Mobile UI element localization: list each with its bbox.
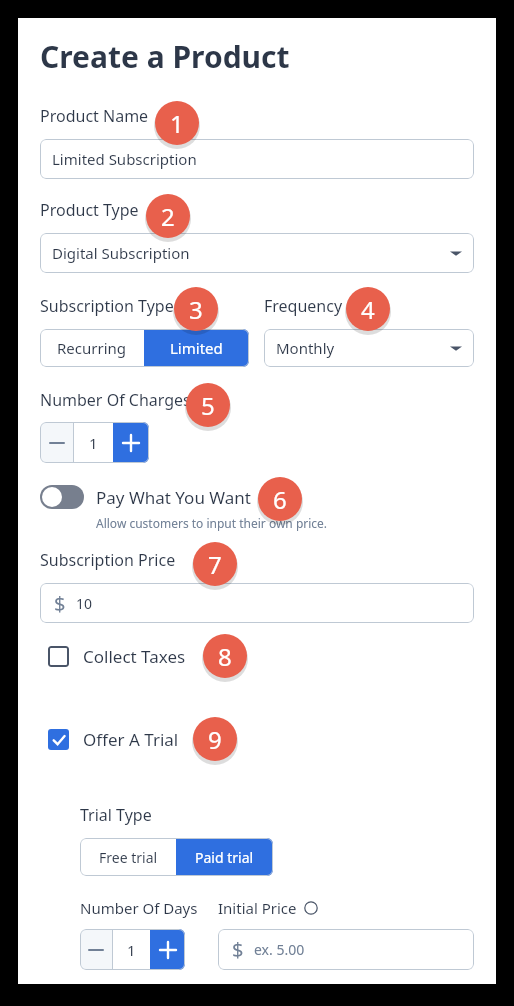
staticText: Offer A Trial [83, 728, 179, 751]
staticText: 8 [218, 640, 232, 673]
staticText: $ [232, 936, 244, 963]
staticText: Frequency [264, 295, 343, 317]
staticText: Allow customers to input their own price… [96, 515, 328, 531]
staticText: Product Name [40, 105, 149, 127]
staticText: Number Of Charges [40, 389, 191, 411]
staticText: Free trial [99, 848, 158, 867]
staticText: 2 [161, 200, 175, 233]
staticText: Number Of Days [80, 898, 198, 918]
staticText: 6 [273, 483, 287, 516]
button[interactable]: Limited Subscription [40, 139, 474, 179]
staticText: Subscription Price [40, 549, 176, 571]
button[interactable]: Paid trial [176, 838, 273, 876]
staticText: Collect Taxes [83, 645, 186, 668]
staticText: 1 [89, 433, 98, 453]
other: Help [304, 901, 318, 915]
button[interactable]: Monthly [264, 329, 474, 367]
staticText: Recurring [57, 338, 127, 358]
staticText: Digital Subscription [52, 243, 190, 263]
staticText: 10 [76, 594, 93, 613]
staticText: Create a Product [40, 36, 290, 77]
button[interactable]: $ [40, 583, 474, 623]
button[interactable]: Digital Subscription [40, 233, 474, 273]
staticText: Paid trial [195, 848, 254, 867]
button[interactable]: Decrease [40, 422, 73, 463]
staticText: Trial Type [80, 804, 152, 826]
staticText: 4 [361, 293, 375, 326]
button[interactable]: Checked [48, 728, 179, 751]
button[interactable]: Checked [48, 729, 69, 750]
staticText: Subscription Type [40, 295, 174, 317]
button[interactable]: Increase [150, 929, 185, 970]
staticText: Limited [170, 338, 223, 358]
staticText: 3 [189, 293, 203, 326]
staticText: Limited Subscription [52, 149, 197, 169]
staticText: ex. 5.00 [254, 940, 305, 959]
staticText: 1 [127, 940, 136, 960]
staticText: 1 [170, 107, 184, 140]
staticText: Monthly [276, 338, 335, 358]
button[interactable]: Unchecked [48, 645, 186, 668]
button[interactable]: Increase [113, 422, 149, 463]
staticText: Pay What You Want [96, 486, 251, 509]
staticText: Initial Price [218, 898, 297, 918]
staticText: 5 [201, 389, 215, 422]
staticText: 7 [208, 548, 222, 581]
staticText: 9 [208, 723, 222, 756]
button[interactable]: Limited [144, 329, 249, 367]
button[interactable]: Recurring [40, 329, 144, 367]
button[interactable]: Free trial [80, 838, 176, 876]
button[interactable]: $ [218, 929, 474, 970]
button[interactable]: Pay What You Want toggle [40, 485, 84, 509]
staticText: $ [54, 590, 66, 617]
button[interactable]: Decrease [80, 929, 112, 970]
button[interactable]: Unchecked [48, 646, 69, 667]
staticText: Product Type [40, 199, 139, 221]
